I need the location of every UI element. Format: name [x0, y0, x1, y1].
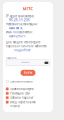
staticText: МГТС	[22, 6, 33, 11]
button[interactable]: Показать пароль	[44, 62, 50, 64]
button[interactable]: Правила доступа	[6, 87, 50, 92]
staticText: user-29371	[9, 34, 26, 38]
button[interactable]: Репутация сети	[6, 92, 50, 96]
staticText: ОАО МГТС	[9, 26, 23, 30]
staticText: ••••••••	[21, 61, 29, 64]
button[interactable]: Запомнить меня	[6, 80, 50, 84]
staticText: Правила доступа	[10, 87, 33, 91]
button[interactable]: Вход через портал госуслуг	[6, 100, 50, 107]
staticText: IP-адрес компьютера:	[6, 14, 34, 18]
staticText: Пароль	[6, 56, 16, 60]
staticText: подробнее	[14, 48, 30, 52]
staticText: Вход через портал госуслуг	[10, 100, 36, 107]
staticText: Для входа в сеть введите	[6, 40, 40, 44]
staticText: Имя пользователя:	[6, 30, 33, 34]
staticText: Название организации:	[6, 22, 38, 26]
staticText: Забыли пароль?	[10, 96, 33, 99]
button[interactable]: подробнее	[6, 48, 30, 52]
staticText: Репутация сети	[10, 92, 30, 95]
staticText: Войти	[23, 71, 32, 74]
button[interactable]: Войти	[20, 70, 35, 76]
staticText: Запомнить меня	[10, 80, 33, 83]
button[interactable]: Забыли пароль?	[6, 96, 50, 100]
staticText: пароль от личного кабинета	[6, 44, 46, 48]
staticText: 95.25.11.235	[9, 18, 30, 22]
